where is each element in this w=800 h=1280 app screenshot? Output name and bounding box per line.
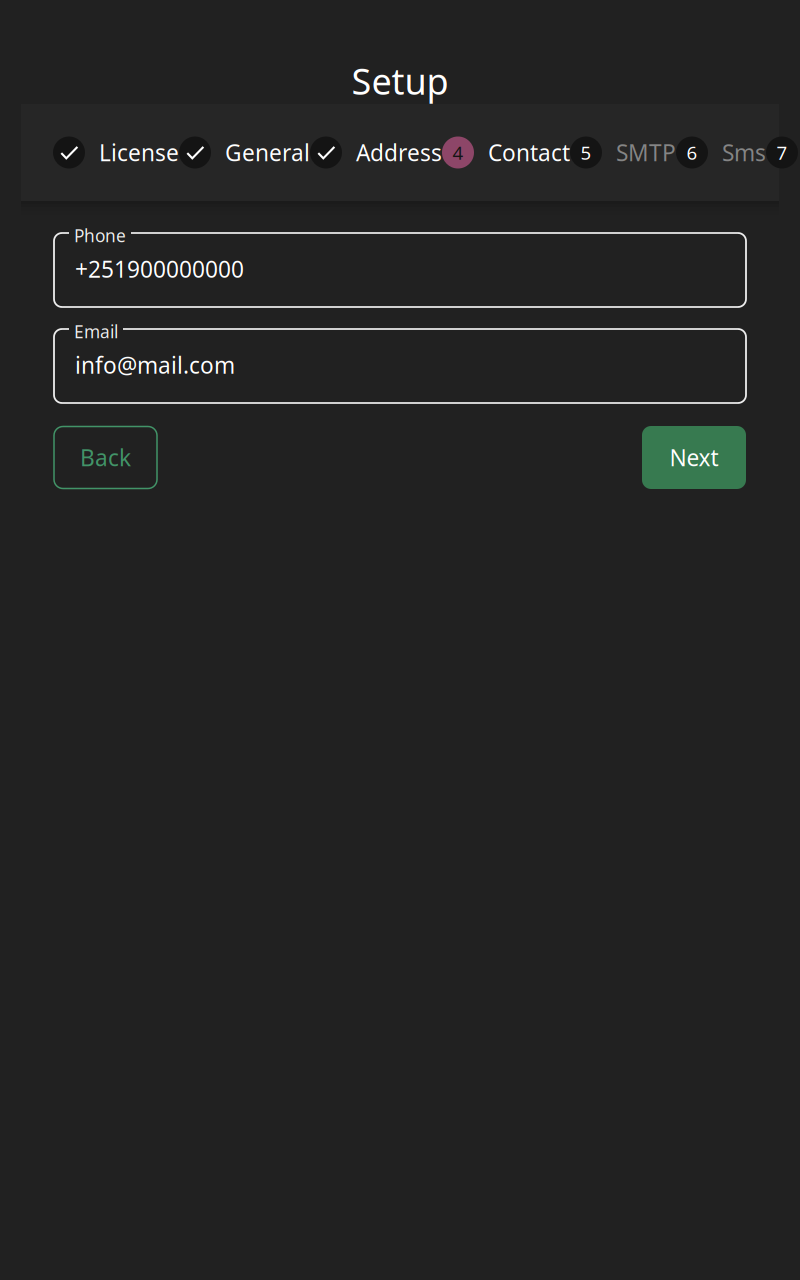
staticText: Address — [356, 137, 442, 167]
staticText: Email — [74, 320, 118, 343]
staticText: Back — [80, 442, 131, 472]
button[interactable]: 5 — [570, 136, 676, 168]
staticText: Sms — [722, 137, 766, 167]
staticText: Setup — [351, 57, 448, 105]
button[interactable]: 4 — [442, 136, 570, 168]
button[interactable]: Address — [310, 136, 442, 168]
button[interactable]: Next — [642, 426, 746, 489]
button[interactable]: License — [53, 136, 179, 168]
button[interactable]: Back — [54, 426, 157, 488]
button[interactable]: General — [179, 136, 310, 168]
staticText: Phone — [74, 224, 126, 247]
button[interactable]: Step 7 — [766, 136, 798, 168]
staticText: 6 — [686, 140, 697, 165]
staticText: General — [225, 137, 310, 167]
staticText: 7 — [776, 140, 787, 165]
staticText: Next — [669, 442, 718, 472]
staticText: Contact — [488, 137, 570, 167]
staticText: SMTP — [616, 137, 676, 167]
staticText: 5 — [580, 140, 591, 165]
staticText: info@mail.com — [75, 350, 235, 380]
button[interactable]: 6 — [676, 136, 766, 168]
staticText: License — [99, 137, 179, 167]
button[interactable]: info@mail.com — [54, 329, 746, 403]
button[interactable]: +251900000000 — [54, 233, 746, 307]
staticText: 4 — [452, 140, 463, 165]
staticText: +251900000000 — [75, 254, 244, 284]
